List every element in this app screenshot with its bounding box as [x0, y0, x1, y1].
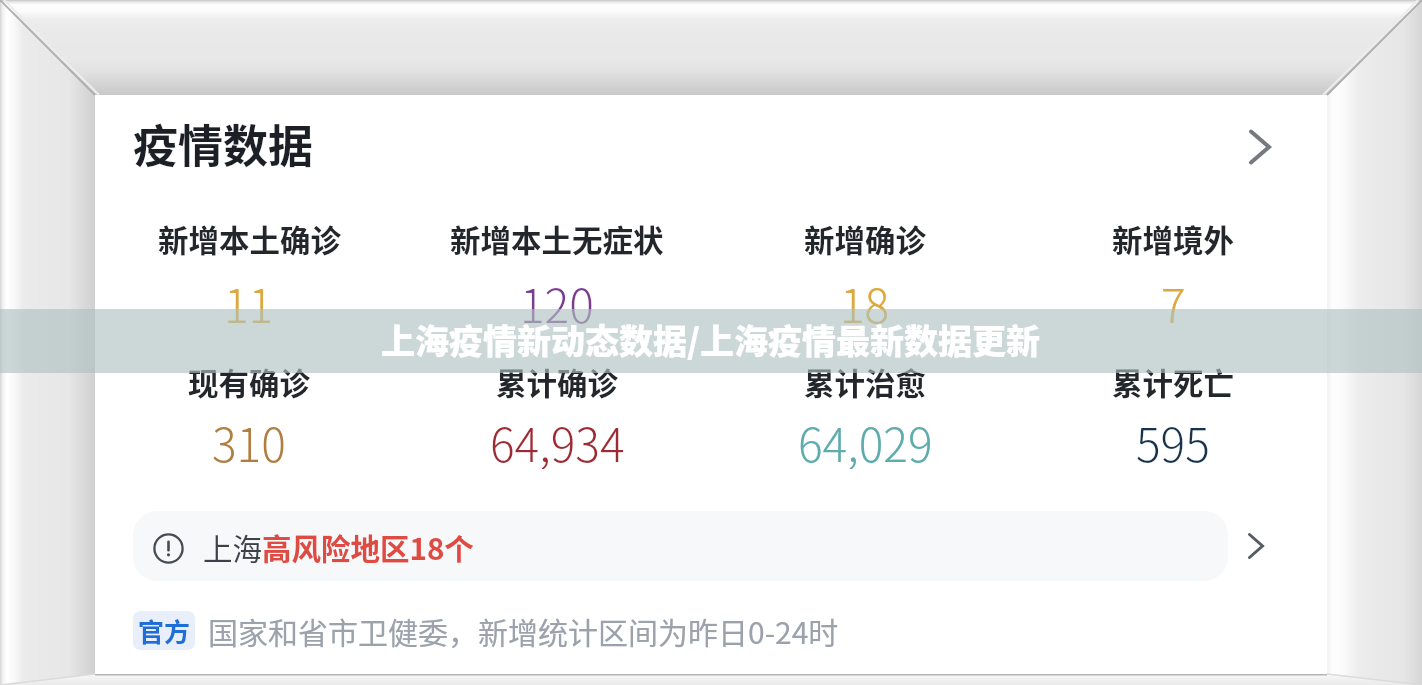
staticText: 595	[1136, 409, 1210, 469]
staticText: 疫情数据	[133, 111, 314, 175]
staticText: 64,934	[490, 409, 625, 469]
staticText: 官方	[138, 612, 191, 650]
staticText: 上海高风险地区18个	[203, 526, 474, 569]
button[interactable]: 疫情数据	[95, 111, 1327, 175]
staticText: 新增确诊	[804, 217, 926, 261]
staticText: 18	[840, 270, 890, 330]
button[interactable]: 上海高风险地区18个	[95, 511, 1327, 581]
staticText: 上海疫情新动态数据/上海疫情最新数据更新	[381, 315, 1041, 364]
staticText: 国家和省市卫健委，新增统计区间为昨日0-24时	[208, 609, 839, 652]
staticText: 7	[1161, 270, 1186, 330]
staticText: 64,029	[798, 409, 933, 469]
staticText: 120	[520, 270, 594, 330]
staticText: 新增本土确诊	[158, 217, 341, 261]
staticText: 现有确诊	[188, 360, 310, 404]
staticText: 累计死亡	[1112, 360, 1234, 404]
button[interactable]: 查看疫情数据详情	[1234, 121, 1286, 173]
staticText: 新增本土无症状	[450, 217, 664, 261]
staticText: 累计确诊	[496, 360, 618, 404]
staticText: 11	[224, 270, 274, 330]
staticText: 新增境外	[1112, 217, 1234, 261]
staticText: 310	[212, 409, 286, 469]
staticText: 累计治愈	[804, 360, 926, 404]
